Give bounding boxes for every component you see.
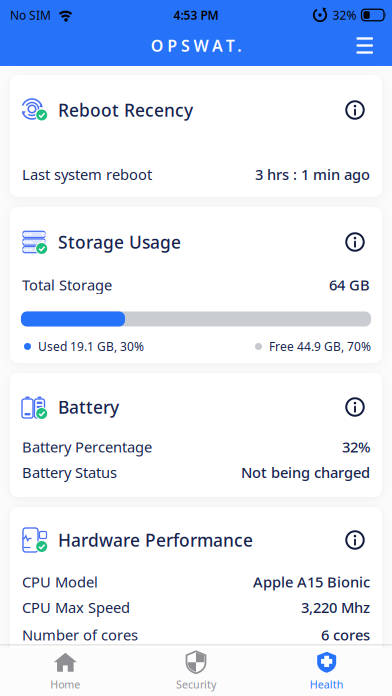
staticText: Battery [58, 395, 119, 418]
button[interactable]: Info [345, 530, 365, 550]
staticText: Total Storage [22, 275, 112, 294]
staticText: Storage Usage [58, 230, 181, 253]
staticText: Free 44.9 GB, 70% [269, 338, 371, 354]
staticText: Security [176, 677, 216, 691]
button[interactable]: Home [0, 645, 131, 691]
staticText: Number of cores [22, 625, 138, 644]
button[interactable]: Security [131, 645, 261, 691]
staticText: 64 GB [329, 275, 370, 294]
staticText: Battery Percentage [22, 437, 152, 456]
staticText: Apple A15 Bionic [253, 572, 370, 591]
staticText: 32% [342, 437, 370, 456]
button[interactable]: Info [345, 232, 365, 252]
button[interactable]: Menu [356, 37, 392, 54]
staticText: Battery Status [22, 462, 117, 482]
button[interactable]: Info [345, 100, 365, 120]
staticText: OPSWAT. [151, 35, 241, 56]
staticText: 32% [332, 7, 356, 23]
staticText: Home [50, 677, 80, 691]
staticText: Last system reboot [22, 164, 152, 184]
staticText: 4:53 PM [173, 7, 218, 23]
staticText: Reboot Recency [58, 98, 193, 121]
button[interactable]: Info [345, 397, 365, 417]
staticText: 6 cores [321, 625, 370, 644]
staticText: 3,220 Mhz [301, 597, 370, 617]
staticText: CPU Model [22, 572, 98, 591]
staticText: Hardware Performance [58, 528, 253, 551]
staticText: Health [310, 677, 344, 691]
staticText: CPU Max Speed [22, 597, 130, 617]
staticText: No SIM [10, 7, 51, 23]
staticText: Not being charged [241, 462, 370, 482]
staticText: Used 19.1 GB, 30% [38, 338, 144, 354]
button[interactable]: Health [261, 645, 392, 691]
staticText: 3 hrs : 1 min ago [255, 164, 370, 184]
